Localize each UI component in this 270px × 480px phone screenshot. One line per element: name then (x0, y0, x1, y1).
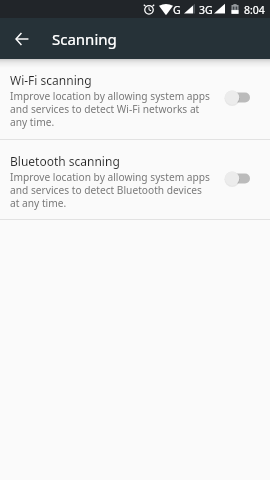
staticText: 8:04 (244, 3, 265, 17)
button[interactable]: Wi-Fi scanning switch, off (217, 81, 257, 113)
staticText: Improve location by allowing system apps… (10, 170, 213, 210)
staticText: Wi-Fi scanning (10, 72, 92, 88)
button[interactable]: Bluetooth scanning (0, 140, 270, 219)
staticText: 3G (199, 3, 213, 17)
staticText: Bluetooth scanning (10, 153, 120, 169)
staticText: Scanning (52, 29, 117, 49)
staticText: G (173, 3, 181, 17)
button[interactable]: Wi-Fi scanning (0, 59, 270, 139)
button[interactable]: Bluetooth scanning switch, off (217, 162, 257, 194)
button[interactable]: Navigate up (7, 24, 36, 53)
staticText: Improve location by allowing system apps… (10, 89, 213, 129)
